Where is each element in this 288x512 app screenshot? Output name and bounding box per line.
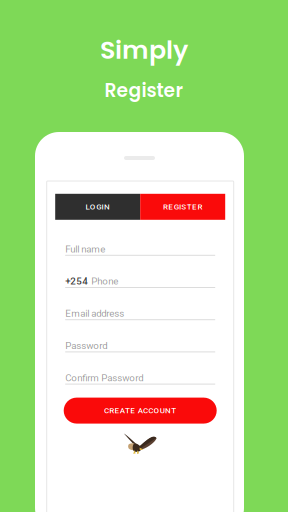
button[interactable]: CREATE ACCOUNT	[64, 398, 217, 424]
button[interactable]: LOGIN	[55, 194, 140, 220]
staticText: Register	[104, 77, 183, 103]
staticText: +254	[65, 276, 88, 287]
staticText: Confirm Password	[65, 372, 143, 384]
staticText: Simply	[100, 32, 188, 68]
staticText: Full name	[65, 243, 105, 255]
staticText: Email address	[65, 308, 124, 319]
staticText: Password	[65, 340, 107, 351]
staticText: CREATE ACCOUNT	[104, 406, 176, 415]
staticText: Phone	[91, 276, 118, 287]
staticText: LOGIN	[85, 202, 110, 211]
staticText: REGISTER	[163, 202, 202, 211]
button[interactable]: REGISTER	[140, 194, 225, 220]
